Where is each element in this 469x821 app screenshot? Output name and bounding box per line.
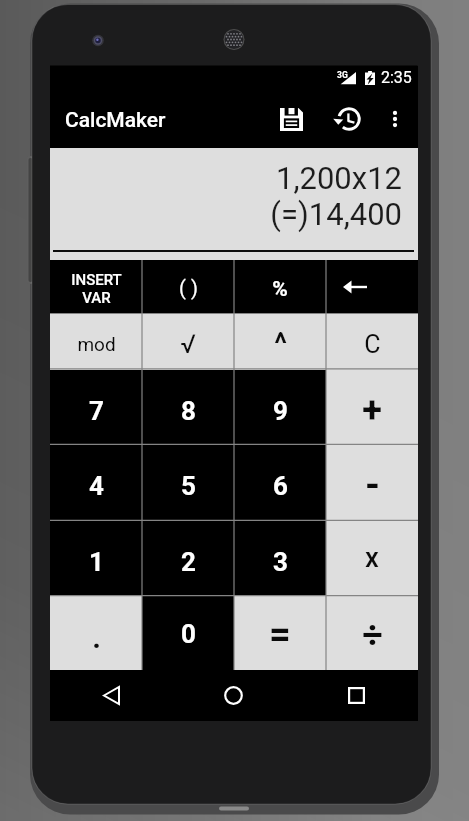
button[interactable]: 2 bbox=[142, 521, 234, 596]
staticText: 8 bbox=[181, 396, 196, 426]
button[interactable]: 7 bbox=[50, 370, 142, 445]
button[interactable]: Recents bbox=[295, 670, 418, 721]
button[interactable]: ÷ bbox=[326, 596, 418, 670]
button[interactable]: + bbox=[326, 370, 418, 445]
staticText: 0 bbox=[181, 619, 196, 649]
button[interactable]: 8 bbox=[142, 370, 234, 445]
button[interactable]: X bbox=[326, 521, 418, 596]
staticText: 7 bbox=[89, 396, 104, 426]
staticText: 3G bbox=[337, 70, 348, 80]
other: Backspace bbox=[343, 279, 367, 295]
button[interactable]: = bbox=[234, 596, 326, 670]
staticText: 2:35 bbox=[381, 68, 412, 87]
staticText: CalcMaker bbox=[65, 108, 166, 133]
staticText: + bbox=[362, 389, 382, 431]
staticText: 2 bbox=[181, 547, 196, 577]
button[interactable]: 1 bbox=[50, 521, 142, 596]
staticText: mod bbox=[77, 333, 116, 355]
staticText: - bbox=[365, 463, 380, 508]
staticText: √ bbox=[180, 329, 196, 359]
button[interactable]: Back bbox=[50, 670, 172, 721]
staticText: = bbox=[269, 612, 291, 657]
staticText: 3 bbox=[273, 547, 288, 577]
button[interactable]: ^ bbox=[234, 314, 326, 370]
button[interactable]: Home bbox=[172, 670, 295, 721]
staticText: 6 bbox=[273, 471, 288, 501]
button[interactable]: History bbox=[326, 94, 372, 144]
staticText: 1 bbox=[89, 547, 104, 577]
button[interactable]: More options bbox=[375, 94, 415, 144]
button[interactable]: 5 bbox=[142, 445, 234, 521]
button[interactable]: 4 bbox=[50, 445, 142, 521]
button[interactable]: ( ) bbox=[142, 260, 234, 314]
button[interactable]: √ bbox=[142, 314, 234, 370]
button[interactable]: 9 bbox=[234, 370, 326, 445]
button[interactable]: Backspace bbox=[326, 260, 418, 314]
button[interactable]: mod bbox=[50, 314, 142, 370]
staticText: 1,200x12 bbox=[275, 160, 402, 196]
staticText: 5 bbox=[181, 471, 196, 501]
button[interactable]: INSERT VAR bbox=[50, 260, 142, 314]
staticText: 4 bbox=[89, 471, 104, 501]
button[interactable]: C bbox=[326, 314, 418, 370]
staticText: ( ) bbox=[179, 276, 198, 299]
staticText: 9 bbox=[273, 396, 288, 426]
staticText: INSERT VAR bbox=[71, 271, 122, 307]
staticText: ÷ bbox=[362, 614, 383, 656]
staticText: (=)14,400 bbox=[270, 196, 402, 232]
staticText: C bbox=[364, 330, 381, 359]
staticText: % bbox=[272, 277, 288, 302]
button[interactable]: 6 bbox=[234, 445, 326, 521]
staticText: ^ bbox=[274, 327, 287, 361]
button[interactable]: 0 bbox=[142, 596, 234, 670]
button[interactable]: Save bbox=[268, 94, 314, 144]
staticText: . bbox=[92, 620, 101, 655]
staticText: X bbox=[365, 548, 379, 573]
button[interactable]: % bbox=[234, 260, 326, 314]
button[interactable]: . bbox=[50, 596, 142, 670]
button[interactable]: - bbox=[326, 445, 418, 521]
button[interactable]: 3 bbox=[234, 521, 326, 596]
